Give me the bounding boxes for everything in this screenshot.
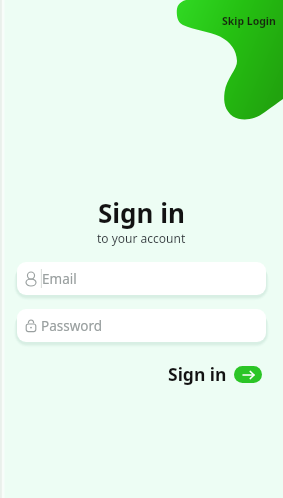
staticText: Password: [41, 317, 103, 335]
button[interactable]: Skip Login: [222, 14, 276, 28]
staticText: Sign in: [168, 362, 227, 386]
button[interactable]: Sign in: [164, 358, 266, 390]
other: Sign in: [234, 366, 262, 383]
button[interactable]: Email: [17, 262, 266, 295]
staticText: Sign in: [98, 195, 185, 230]
staticText: Email: [42, 270, 77, 288]
button[interactable]: Password: [17, 309, 266, 342]
staticText: Skip Login: [222, 14, 276, 28]
staticText: to your account: [97, 230, 186, 246]
